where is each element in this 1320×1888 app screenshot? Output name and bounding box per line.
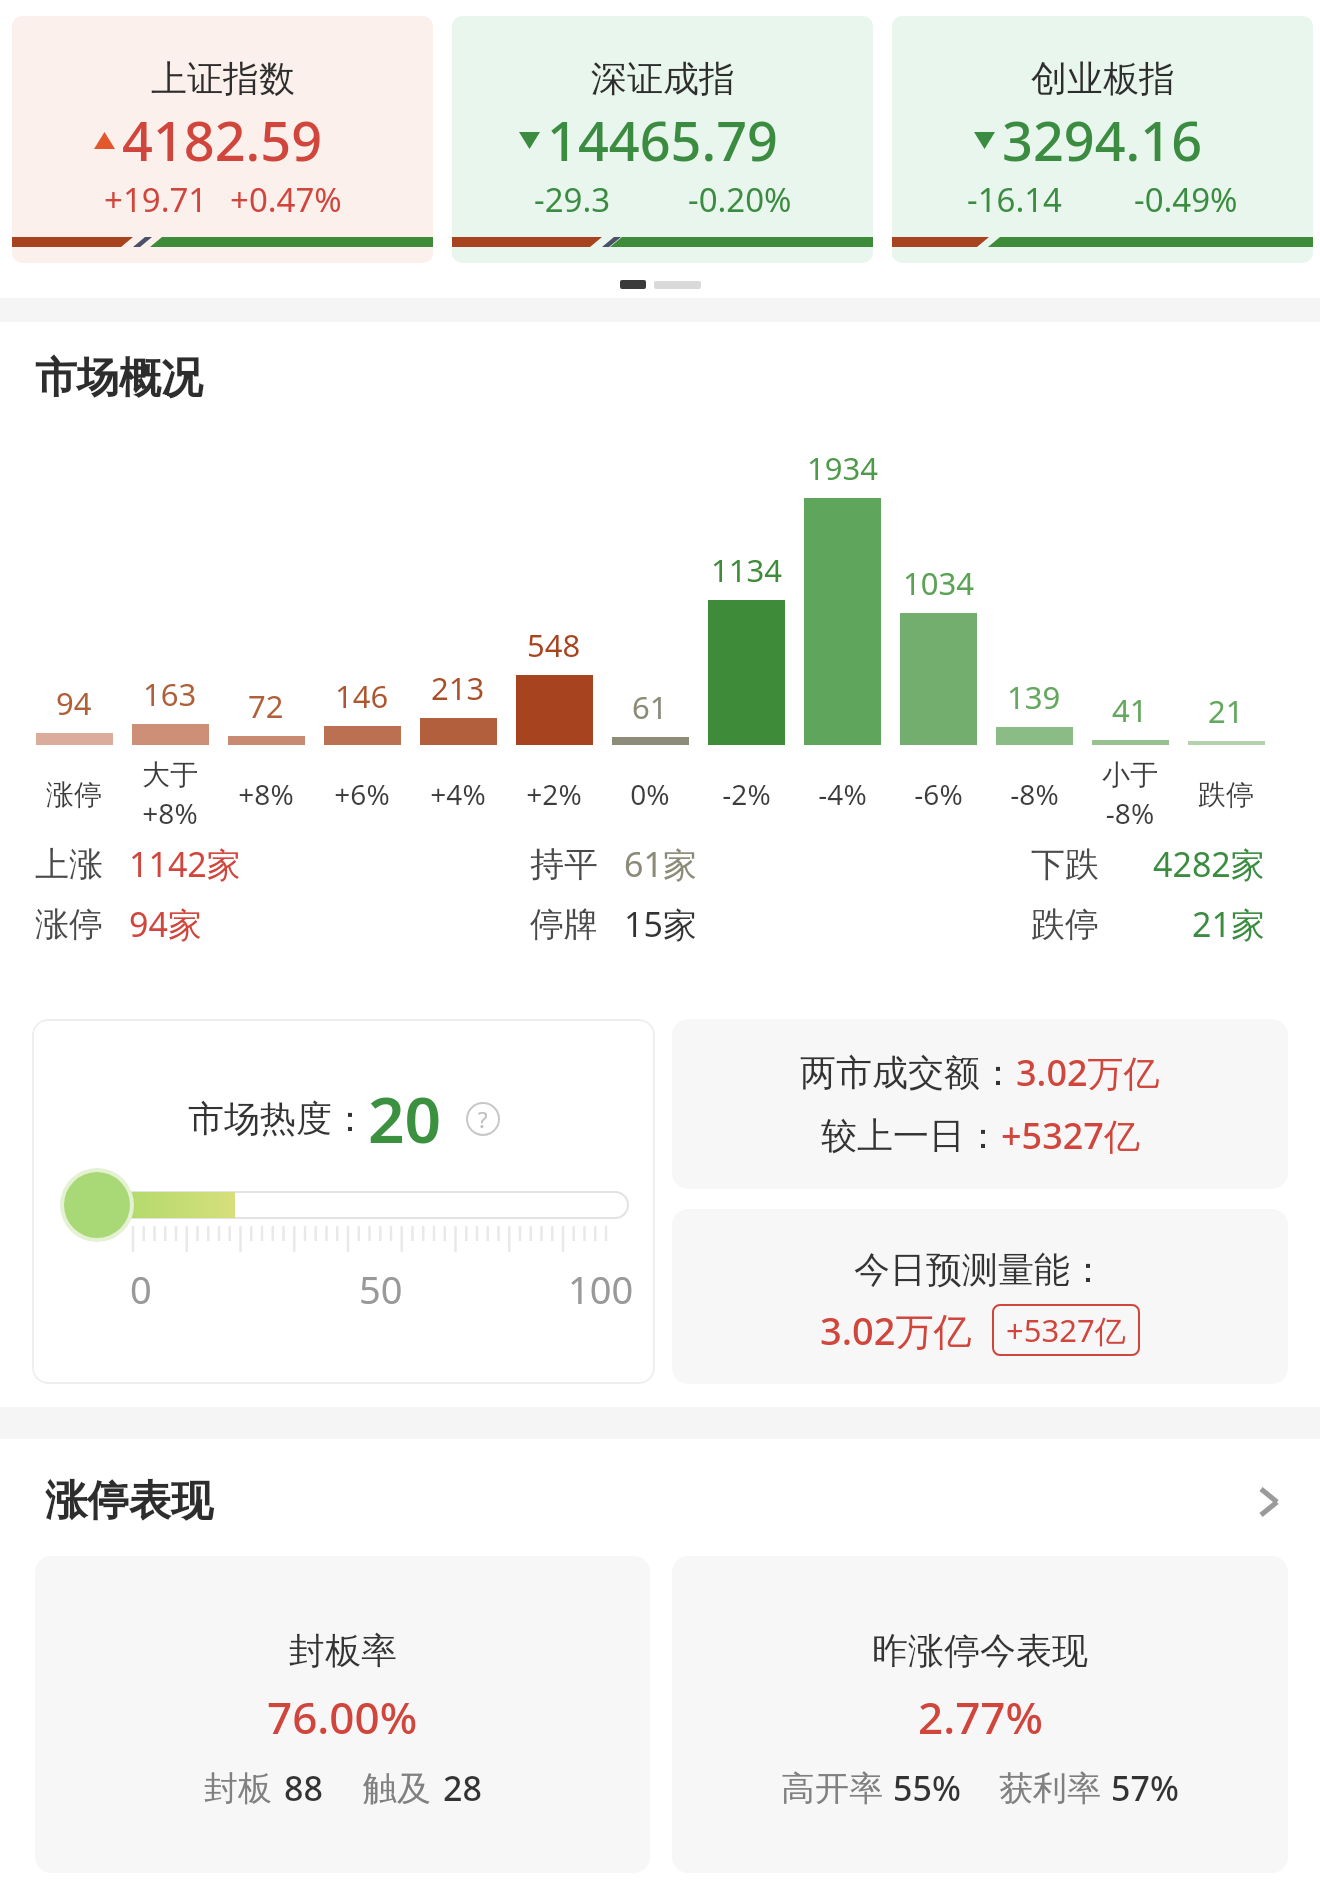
staticText: 停牌 <box>530 903 598 946</box>
staticText: ? <box>478 1104 488 1134</box>
staticText: 15家 <box>624 901 697 947</box>
staticText: +0.47% <box>230 177 342 222</box>
button[interactable]: 封板率 <box>35 1556 650 1873</box>
staticText: 深证成指 <box>591 56 735 101</box>
staticText: 0 <box>130 1263 152 1315</box>
staticText: 3294.16 <box>1002 103 1203 177</box>
button[interactable]: 上证指数 <box>12 16 433 263</box>
staticText: 市场概况 <box>35 352 203 405</box>
staticText: 100 <box>568 1263 634 1315</box>
staticText: 大于 +8% <box>142 757 198 831</box>
staticText: 139 <box>1007 676 1061 718</box>
staticText: 1034 <box>903 562 974 604</box>
staticText: 1134 <box>711 549 782 591</box>
staticText: 14465.79 <box>547 103 778 177</box>
staticText: 146 <box>335 675 389 717</box>
button[interactable]: 两市成交额： <box>672 1019 1288 1189</box>
staticText: 0% <box>630 775 670 813</box>
staticText: +2% <box>526 775 582 813</box>
staticText: +4% <box>430 775 486 813</box>
staticText: 21 <box>1208 690 1244 732</box>
staticText: -16.14 <box>967 177 1062 222</box>
staticText: 3.02万亿 <box>820 1304 972 1356</box>
staticText: -0.49% <box>1134 177 1238 222</box>
staticText: 61家 <box>624 841 697 887</box>
staticText: 94 <box>56 682 92 724</box>
staticText: 72 <box>248 685 284 727</box>
staticText: 小于 -8% <box>1102 757 1158 831</box>
staticText: 163 <box>143 673 197 715</box>
staticText: 市场热度： <box>188 1096 368 1141</box>
staticText: 涨停 <box>35 903 103 946</box>
staticText: 封板 <box>204 1767 272 1810</box>
button[interactable]: 今日预测量能： <box>672 1209 1288 1384</box>
staticText: 上涨 <box>35 843 103 886</box>
button[interactable]: 深证成指 <box>452 16 873 263</box>
button[interactable]: 涨停表现 <box>45 1475 1280 1528</box>
staticText: 3.02万亿 <box>1016 1048 1160 1097</box>
staticText: 41 <box>1112 689 1148 731</box>
staticText: 上证指数 <box>151 56 295 101</box>
staticText: -2% <box>722 775 771 813</box>
staticText: 获利率 <box>999 1767 1101 1810</box>
staticText: 跌停 <box>1198 777 1254 812</box>
staticText: 触及 <box>363 1767 431 1810</box>
staticText: 跌停 <box>1031 903 1099 946</box>
button[interactable]: 昨涨停今表现 <box>672 1556 1288 1873</box>
button[interactable]: 创业板指 <box>892 16 1313 263</box>
staticText: 下跌 <box>1031 843 1099 886</box>
staticText: +8% <box>238 775 294 813</box>
staticText: 今日预测量能： <box>854 1247 1106 1292</box>
staticText: 20 <box>368 1075 442 1162</box>
staticText: 94家 <box>129 901 202 947</box>
staticText: 封板率 <box>289 1628 397 1673</box>
staticText: +5327亿 <box>1001 1111 1140 1160</box>
staticText: 两市成交额： <box>800 1050 1016 1095</box>
staticText: 创业板指 <box>1031 56 1175 101</box>
staticText: 2.77% <box>918 1687 1043 1747</box>
staticText: 548 <box>527 624 581 666</box>
staticText: -4% <box>818 775 867 813</box>
staticText: 4182.59 <box>122 103 323 177</box>
staticText: 4282家 <box>1153 841 1265 887</box>
staticText: 较上一日： <box>821 1113 1001 1158</box>
staticText: 高开率 <box>781 1767 883 1810</box>
staticText: -8% <box>1010 775 1059 813</box>
staticText: 1934 <box>807 447 878 489</box>
staticText: 涨停 <box>46 777 102 812</box>
staticText: -29.3 <box>534 177 611 222</box>
staticText: 61 <box>632 686 668 728</box>
staticText: 持平 <box>530 843 598 886</box>
staticText: +6% <box>334 775 390 813</box>
staticText: 57% <box>1111 1765 1179 1811</box>
staticText: 涨停表现 <box>45 1475 213 1528</box>
staticText: 213 <box>431 667 485 709</box>
staticText: +5327亿 <box>1006 1309 1126 1351</box>
staticText: 55% <box>893 1765 961 1811</box>
staticText: 76.00% <box>267 1687 418 1747</box>
staticText: 50 <box>359 1263 403 1315</box>
staticText: 昨涨停今表现 <box>872 1628 1088 1673</box>
staticText: 21家 <box>1192 901 1265 947</box>
staticText: -6% <box>914 775 963 813</box>
staticText: 88 <box>284 1765 323 1811</box>
staticText: 28 <box>443 1765 482 1811</box>
staticText: +19.71 <box>104 177 208 222</box>
staticText: 1142家 <box>129 841 241 887</box>
button[interactable]: 市场热度： <box>32 1019 655 1384</box>
staticText: -0.20% <box>688 177 792 222</box>
